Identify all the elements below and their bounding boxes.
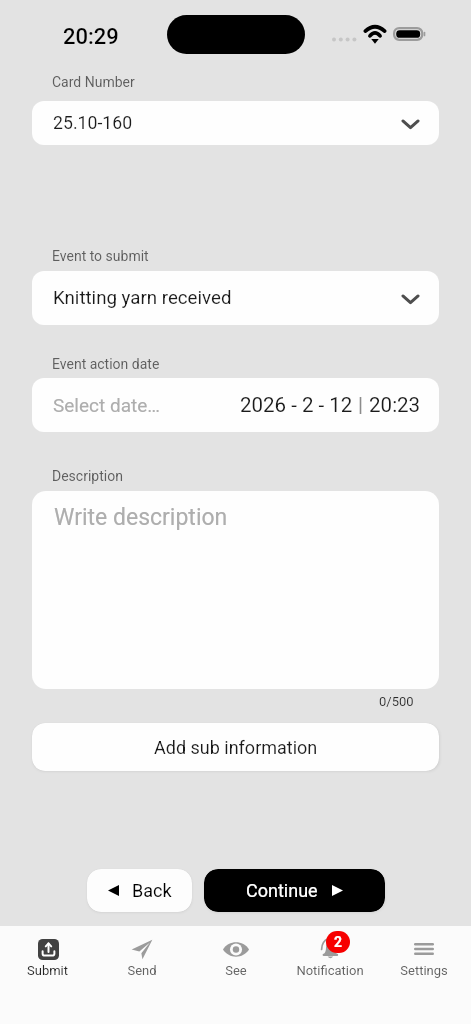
button[interactable]: Write description (32, 491, 439, 689)
button[interactable]: Knitting yarn received (32, 271, 439, 325)
staticText: 25.10-160 (53, 113, 133, 134)
staticText: Continue (246, 880, 318, 901)
button[interactable]: Select date… (32, 378, 439, 432)
staticText: Notification (296, 963, 364, 978)
staticText: Select date… (53, 394, 160, 416)
staticText: See (225, 963, 247, 978)
staticText: Submit (27, 963, 68, 978)
staticText: Settings (400, 963, 448, 978)
button[interactable]: See (189, 926, 283, 1024)
staticText: Card Number (52, 74, 135, 90)
staticText: 2 (334, 934, 343, 950)
staticText: | (358, 393, 364, 417)
button[interactable]: Add sub information (32, 723, 439, 771)
other: Expand (401, 288, 420, 309)
staticText: Event action date (52, 356, 160, 372)
staticText: Description (52, 468, 123, 484)
other: Expand (401, 113, 420, 134)
button[interactable]: Back (87, 869, 192, 912)
button[interactable]: 25.10-160 (32, 101, 439, 145)
staticText: Event to submit (52, 248, 149, 264)
button[interactable]: Settings (377, 926, 471, 1024)
staticText: 2026 - 2 - 12 (240, 393, 358, 417)
staticText: Back (132, 880, 172, 901)
button[interactable]: Send (95, 926, 189, 1024)
staticText: Send (127, 963, 157, 978)
staticText: 20:29 (63, 24, 119, 50)
staticText: Knitting yarn received (53, 287, 232, 309)
button[interactable]: Submit (0, 926, 95, 1024)
staticText: 0/500 (379, 694, 414, 709)
staticText: Add sub information (154, 737, 318, 758)
button[interactable]: 2 (283, 926, 377, 1024)
staticText: Write description (54, 504, 228, 531)
staticText: 20:23 (364, 393, 421, 417)
button[interactable]: Continue (204, 869, 385, 912)
